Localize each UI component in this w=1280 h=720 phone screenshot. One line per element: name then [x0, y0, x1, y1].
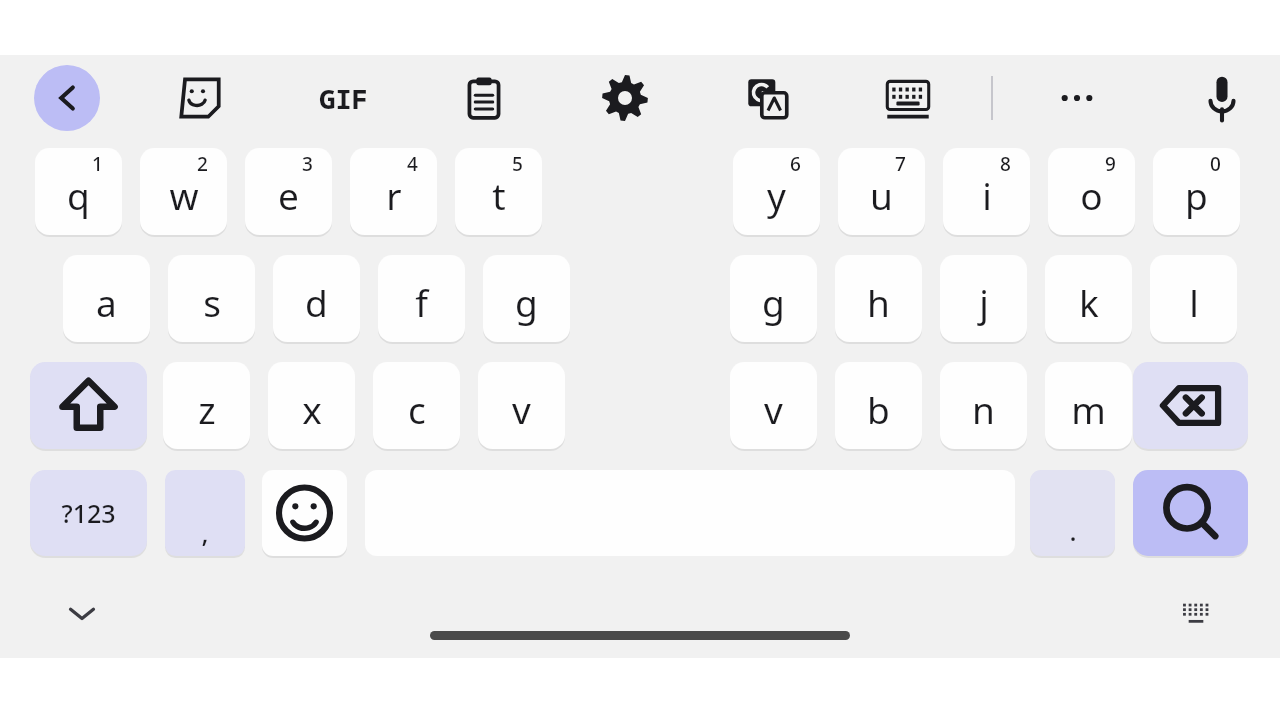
staticText: m	[1071, 384, 1106, 434]
staticText: 6	[790, 151, 801, 177]
button[interactable]: GIF	[303, 76, 383, 120]
staticText: 9	[1105, 151, 1116, 177]
button[interactable]: t	[455, 148, 542, 235]
staticText: a	[96, 277, 117, 327]
button[interactable]: g	[730, 255, 817, 342]
button[interactable]: u	[838, 148, 925, 235]
button[interactable]: Shift	[30, 362, 147, 449]
staticText: w	[169, 170, 199, 220]
staticText: j	[979, 277, 989, 327]
staticText: v	[764, 384, 783, 434]
button[interactable]: Clipboard	[458, 72, 510, 124]
staticText: i	[982, 170, 992, 220]
staticText: ?123	[61, 496, 116, 530]
button[interactable]: Backspace	[1133, 362, 1248, 449]
button[interactable]: c	[373, 362, 460, 449]
button[interactable]: m	[1045, 362, 1132, 449]
button[interactable]: j	[940, 255, 1027, 342]
staticText: g	[762, 277, 785, 327]
staticText: d	[305, 277, 328, 327]
button[interactable]: Emoji	[262, 470, 347, 556]
button[interactable]: Stickers	[174, 72, 226, 124]
button[interactable]: e	[245, 148, 332, 235]
button[interactable]: Switch keyboard	[1174, 597, 1218, 629]
staticText: o	[1080, 170, 1103, 220]
button[interactable]: s	[168, 255, 255, 342]
button[interactable]: q	[35, 148, 122, 235]
staticText: z	[198, 384, 216, 434]
button[interactable]: y	[733, 148, 820, 235]
button[interactable]: p	[1153, 148, 1240, 235]
button[interactable]: Back	[34, 65, 100, 131]
button[interactable]: d	[273, 255, 360, 342]
button[interactable]: Hide keyboard	[56, 592, 108, 636]
button[interactable]: v	[730, 362, 817, 449]
staticText: 0	[1210, 151, 1221, 177]
staticText: t	[492, 170, 506, 220]
button[interactable]: a	[63, 255, 150, 342]
button[interactable]: Settings	[599, 72, 651, 124]
staticText: 8	[1000, 151, 1011, 177]
staticText: e	[278, 170, 299, 220]
button[interactable]: More options	[1049, 78, 1105, 118]
staticText: n	[972, 384, 995, 434]
staticText: y	[767, 170, 786, 220]
staticText: g	[515, 277, 538, 327]
button[interactable]: v	[478, 362, 565, 449]
button[interactable]: Keyboard layout	[880, 72, 936, 124]
button[interactable]: n	[940, 362, 1027, 449]
button[interactable]: Voice input	[1198, 70, 1246, 126]
staticText: l	[1189, 277, 1199, 327]
button[interactable]: Search	[1133, 470, 1248, 556]
staticText: k	[1079, 277, 1099, 327]
staticText: .	[1069, 513, 1077, 548]
staticText: v	[512, 384, 531, 434]
staticText: 7	[895, 151, 906, 177]
staticText: 4	[407, 151, 418, 177]
button[interactable]: g	[483, 255, 570, 342]
staticText: s	[203, 277, 221, 327]
staticText: f	[415, 277, 428, 327]
button[interactable]: b	[835, 362, 922, 449]
staticText: b	[867, 384, 890, 434]
staticText: 5	[512, 151, 523, 177]
button[interactable]: h	[835, 255, 922, 342]
staticText: 1	[92, 151, 103, 177]
button[interactable]: ?123	[30, 470, 147, 556]
button[interactable]: z	[163, 362, 250, 449]
staticText: q	[67, 170, 90, 220]
staticText: h	[867, 277, 890, 327]
staticText: GIF	[319, 80, 368, 117]
button[interactable]: k	[1045, 255, 1132, 342]
staticText: u	[870, 170, 893, 220]
button[interactable]: o	[1048, 148, 1135, 235]
button[interactable]: w	[140, 148, 227, 235]
staticText: p	[1185, 170, 1208, 220]
staticText: x	[302, 384, 322, 434]
staticText: c	[408, 384, 426, 434]
button[interactable]: l	[1150, 255, 1237, 342]
button[interactable]: r	[350, 148, 437, 235]
button[interactable]: .	[1030, 470, 1115, 556]
button[interactable]: f	[378, 255, 465, 342]
staticText: r	[386, 170, 402, 220]
button[interactable]: Translate	[741, 72, 793, 124]
button[interactable]: x	[268, 362, 355, 449]
staticText: ,	[201, 515, 209, 550]
staticText: 2	[197, 151, 208, 177]
button[interactable]: i	[943, 148, 1030, 235]
button[interactable]: ,	[165, 470, 245, 556]
staticText: 3	[302, 151, 313, 177]
